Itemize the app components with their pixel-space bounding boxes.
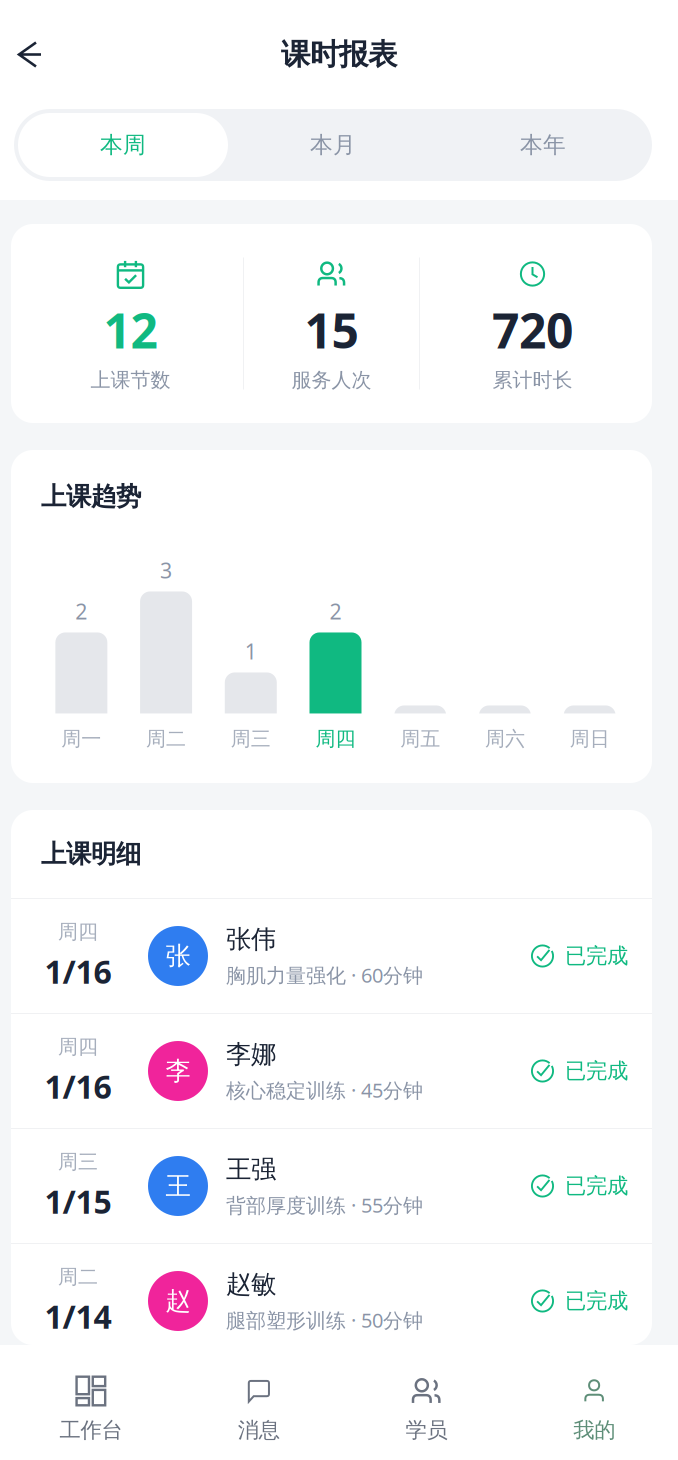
staticText: 周日 (570, 726, 610, 751)
button[interactable]: 本周 (18, 113, 228, 177)
staticText: 周二 (58, 1264, 98, 1289)
staticText: 已完成 (565, 943, 628, 969)
staticText: 2 (329, 597, 341, 625)
staticText: 课时报表 (281, 36, 397, 72)
staticText: 赵敏 (226, 1269, 276, 1300)
staticText: 本年 (520, 131, 566, 159)
staticText: 上课趋势 (41, 481, 141, 512)
button[interactable]: 周四 (11, 899, 652, 1013)
staticText: 周四 (58, 1034, 98, 1059)
staticText: 周一 (61, 726, 101, 751)
staticText: 周五 (400, 726, 440, 751)
staticText: 本周 (100, 131, 146, 159)
staticText: 背部厚度训练 · 55分钟 (226, 1192, 423, 1218)
staticText: 周三 (58, 1149, 98, 1174)
button[interactable]: 消息 (175, 1345, 343, 1460)
staticText: 张伟 (226, 924, 276, 955)
staticText: 本月 (310, 131, 356, 159)
staticText: 消息 (238, 1417, 280, 1443)
staticText: 王强 (226, 1154, 276, 1185)
staticText: 已完成 (565, 1288, 628, 1314)
staticText: 学员 (405, 1417, 447, 1443)
staticText: 胸肌力量强化 · 60分钟 (226, 962, 423, 988)
staticText: 周三 (231, 726, 271, 751)
staticText: 累计时长 (492, 368, 572, 392)
staticText: 1/14 (44, 1295, 111, 1337)
staticText: 2 (75, 597, 87, 625)
staticText: 周四 (58, 919, 98, 944)
staticText: 3 (160, 556, 172, 584)
staticText: 王 (165, 1170, 190, 1201)
button[interactable]: Back (0, 26, 60, 82)
staticText: 已完成 (565, 1173, 628, 1199)
button[interactable]: 学员 (342, 1345, 510, 1460)
staticText: 周六 (485, 726, 525, 751)
staticText: 张 (165, 940, 190, 971)
staticText: 1/15 (44, 1180, 111, 1222)
staticText: 已完成 (565, 1058, 628, 1084)
button[interactable]: 本月 (228, 113, 438, 177)
staticText: 1 (245, 637, 257, 665)
staticText: 周四 (315, 726, 355, 751)
staticText: 15 (304, 298, 358, 362)
staticText: 1/16 (44, 950, 111, 992)
staticText: 720 (492, 298, 573, 362)
button[interactable]: 工作台 (7, 1345, 175, 1460)
staticText: 上课明细 (41, 838, 141, 869)
button[interactable]: 本年 (438, 113, 648, 177)
staticText: 李 (165, 1055, 190, 1086)
staticText: 工作台 (59, 1417, 122, 1443)
staticText: 上课节数 (90, 368, 170, 392)
button[interactable]: 周二 (11, 1244, 652, 1358)
staticText: 1/16 (44, 1065, 111, 1107)
button[interactable]: 我的 (510, 1345, 678, 1460)
staticText: 核心稳定训练 · 45分钟 (226, 1077, 423, 1103)
staticText: 李娜 (226, 1039, 276, 1070)
staticText: 12 (103, 298, 157, 362)
staticText: 周二 (146, 726, 186, 751)
staticText: 我的 (573, 1417, 615, 1443)
staticText: 服务人次 (291, 368, 371, 392)
button[interactable]: 周四 (11, 1014, 652, 1128)
staticText: 腿部塑形训练 · 50分钟 (226, 1307, 423, 1333)
button[interactable]: 周三 (11, 1129, 652, 1243)
staticText: 赵 (165, 1285, 190, 1316)
